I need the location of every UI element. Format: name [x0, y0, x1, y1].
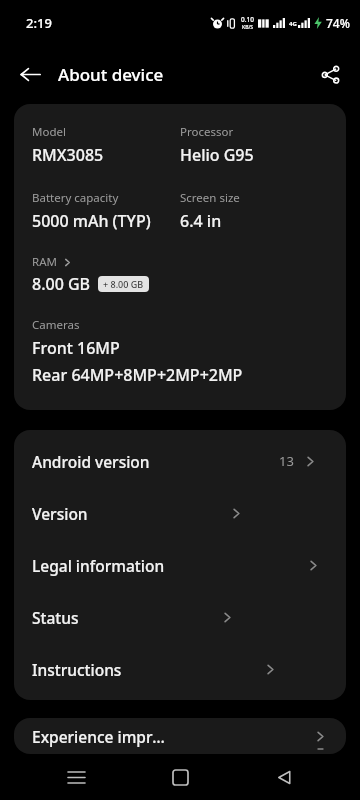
staticText: 0.10: [241, 15, 254, 24]
staticText: RAM: [32, 254, 57, 270]
staticText: Legal information: [32, 555, 165, 576]
staticText: Model: [32, 124, 66, 140]
staticText: RMX3085: [32, 144, 104, 166]
staticText: 4G: [289, 20, 297, 28]
button[interactable]: Home: [152, 754, 208, 800]
staticText: 13: [279, 452, 294, 470]
staticText: Rear 64MP+8MP+2MP+2MP: [32, 364, 243, 386]
staticText: 5000 mAh (TYP): [32, 210, 151, 232]
staticText: Battery capacity: [32, 190, 119, 206]
button[interactable]: Status: [14, 591, 346, 643]
staticText: 6.4 in: [180, 210, 222, 232]
staticText: Screen size: [180, 190, 240, 206]
staticText: Front 16MP: [32, 337, 120, 359]
button[interactable]: Back: [256, 754, 312, 800]
button[interactable]: Version: [14, 487, 346, 539]
button[interactable]: Instructions: [14, 643, 346, 695]
staticText: 8.00 GB: [32, 273, 91, 295]
button[interactable]: Back: [10, 54, 50, 94]
button[interactable]: Legal information: [14, 539, 346, 591]
button[interactable]: Share: [310, 54, 350, 94]
button[interactable]: Experience improvement programme: [14, 723, 346, 749]
staticText: 2:19: [26, 14, 52, 32]
staticText: Processor: [180, 124, 234, 140]
button[interactable]: Android version: [14, 435, 346, 487]
staticText: KB/S: [242, 24, 254, 31]
staticText: Android version: [32, 451, 150, 472]
staticText: Version: [32, 503, 88, 524]
staticText: Instructions: [32, 659, 122, 680]
staticText: Helio G95: [180, 144, 254, 166]
staticText: Status: [32, 607, 79, 628]
button[interactable]: Recent apps: [48, 754, 104, 800]
button[interactable]: RAM: [32, 254, 149, 295]
staticText: + 8.00 GB: [103, 278, 144, 290]
staticText: 74%: [326, 15, 350, 31]
staticText: Experience improvement programme: [32, 726, 172, 747]
staticText: Cameras: [32, 317, 80, 333]
staticText: About device: [58, 63, 164, 86]
